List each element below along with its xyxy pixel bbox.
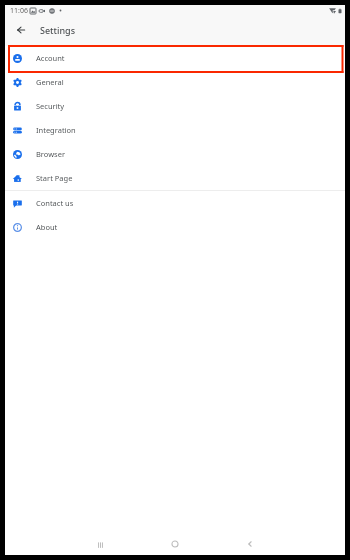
- button[interactable]: Recent apps: [85, 533, 116, 555]
- button[interactable]: Security: [5, 94, 345, 118]
- staticText: Start Page: [36, 173, 73, 183]
- staticText: About: [36, 222, 58, 232]
- button[interactable]: Account: [5, 46, 345, 70]
- button[interactable]: Back: [234, 533, 265, 555]
- button[interactable]: Start Page: [5, 166, 345, 190]
- button[interactable]: Home: [159, 533, 190, 555]
- staticText: Contact us: [36, 198, 74, 208]
- staticText: Settings: [40, 24, 76, 36]
- staticText: General: [36, 77, 64, 87]
- button[interactable]: Contact us: [5, 191, 345, 215]
- staticText: Browser: [36, 149, 66, 159]
- button[interactable]: General: [5, 70, 345, 94]
- staticText: Account: [36, 53, 65, 63]
- button[interactable]: Browser: [5, 142, 345, 166]
- staticText: Integration: [36, 125, 76, 135]
- button[interactable]: Back: [5, 15, 36, 45]
- button[interactable]: Integration: [5, 118, 345, 142]
- staticText: 11:06: [10, 6, 28, 16]
- staticText: Security: [36, 101, 65, 111]
- button[interactable]: About: [5, 215, 345, 239]
